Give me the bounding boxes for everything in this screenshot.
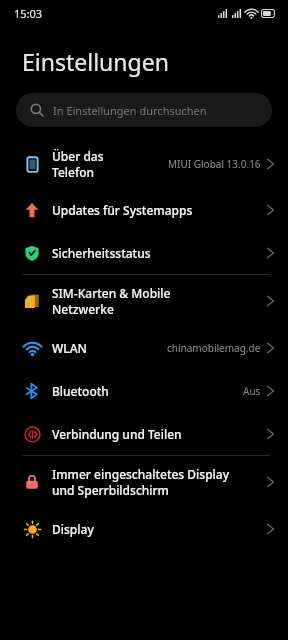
other: Öffnen [267, 247, 274, 259]
staticText: Aus [243, 384, 261, 398]
other: Öffnen [267, 158, 274, 170]
staticText: In Einstellungen durchsuchen [53, 103, 207, 118]
staticText: Über das Telefon [52, 148, 104, 180]
button[interactable]: Immer eingeschaltetes Display und Sperrb… [0, 456, 288, 507]
button[interactable]: Display [0, 507, 288, 550]
button[interactable]: Updates für Systemapps [0, 188, 288, 231]
staticText: Verbindung und Teilen [52, 426, 182, 442]
button[interactable]: Sicherheitsstatus [0, 231, 288, 274]
button[interactable]: WLAN [0, 326, 288, 369]
button[interactable]: Verbindung und Teilen [0, 412, 288, 455]
other: Öffnen [267, 342, 274, 354]
button[interactable]: SIM-Karten & Mobile Netzwerke [0, 275, 288, 326]
staticText: 15:03 [14, 6, 43, 21]
staticText: Display [52, 521, 94, 537]
staticText: Immer eingeschaltetes Display und Sperrb… [52, 466, 230, 498]
staticText: MIUI Global 13.0.16 [168, 157, 261, 171]
other: Öffnen [267, 476, 274, 488]
button[interactable]: Bluetooth [0, 369, 288, 412]
other: Öffnen [267, 385, 274, 397]
staticText: Sicherheitsstatus [52, 245, 151, 261]
staticText: SIM-Karten & Mobile Netzwerke [52, 285, 171, 317]
other: Öffnen [267, 204, 274, 216]
button[interactable]: Über das Telefon [0, 140, 288, 188]
staticText: Updates für Systemapps [52, 202, 193, 218]
button[interactable]: In Einstellungen durchsuchen [16, 93, 272, 127]
other: Öffnen [267, 428, 274, 440]
staticText: Bluetooth [52, 383, 109, 399]
staticText: Einstellungen [22, 46, 169, 77]
other: Öffnen [267, 295, 274, 307]
staticText: WLAN [52, 340, 87, 356]
other: Öffnen [267, 523, 274, 535]
staticText: chinamobilemag.de [167, 341, 261, 355]
